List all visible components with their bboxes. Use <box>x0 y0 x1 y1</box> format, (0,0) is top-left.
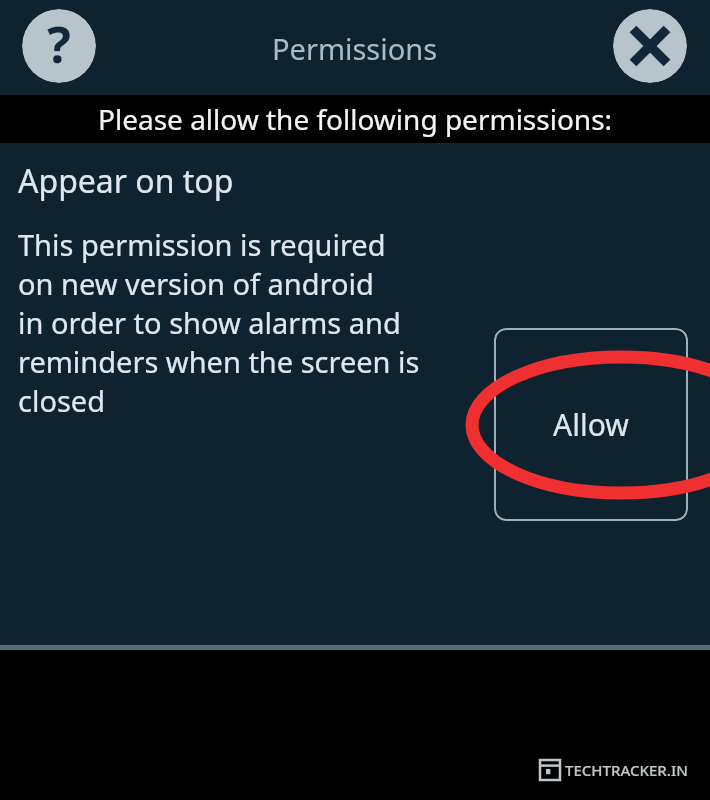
staticText: Please allow the following permissions: <box>98 100 613 138</box>
staticText: This permission is required on new versi… <box>18 225 420 420</box>
staticText: ? <box>47 10 71 78</box>
button[interactable]: Allow <box>494 328 688 521</box>
staticText: Allow <box>553 404 629 445</box>
button[interactable]: Close <box>613 9 687 83</box>
staticText: Appear on top <box>18 159 234 203</box>
button[interactable]: Help <box>22 9 96 83</box>
staticText: TECHTRACKER.IN <box>565 760 688 780</box>
staticText: Permissions <box>272 29 438 68</box>
